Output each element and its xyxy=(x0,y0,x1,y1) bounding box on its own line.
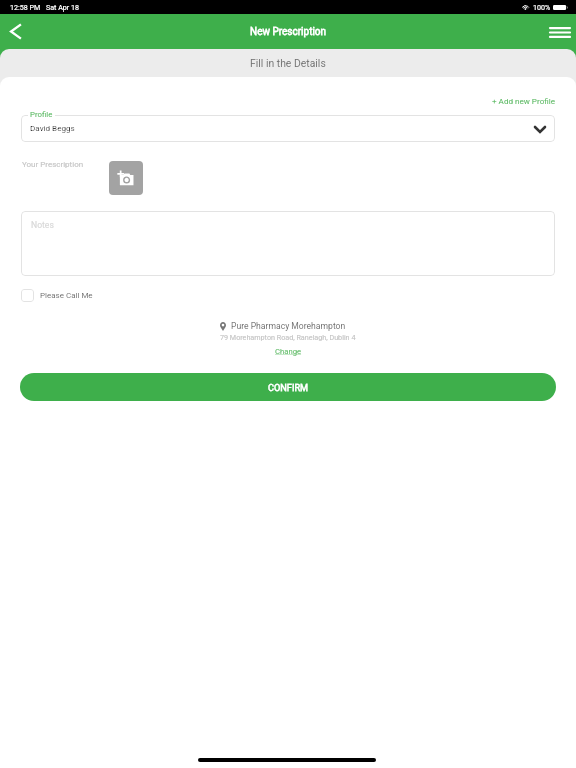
staticText: 79 Morehampton Road, Ranelagh, Dublin 4 xyxy=(220,333,356,341)
staticText: David Beggs xyxy=(30,123,75,132)
button[interactable]: Back xyxy=(0,16,32,48)
button[interactable]: Menu xyxy=(544,16,576,48)
button[interactable]: Notes xyxy=(21,211,555,276)
staticText: Notes xyxy=(31,220,54,230)
button[interactable]: + Add new Profile xyxy=(490,94,557,107)
button[interactable]: CONFIRM xyxy=(20,373,556,401)
staticText: Sat Apr 18 xyxy=(46,3,79,11)
button[interactable]: Add photo xyxy=(109,161,143,195)
staticText: Profile xyxy=(30,110,53,119)
staticText: Your Prescription xyxy=(22,160,84,169)
staticText: 12:58 PM xyxy=(10,3,41,11)
button[interactable]: David Beggs xyxy=(21,115,555,142)
staticText: CONFIRM xyxy=(268,382,309,393)
staticText: New Prescription xyxy=(250,26,327,38)
staticText: 100% xyxy=(533,3,551,11)
button[interactable]: Please Call Me xyxy=(21,289,93,302)
staticText: + Add new Profile xyxy=(492,96,555,105)
staticText: Fill in the Details xyxy=(250,57,326,69)
staticText: Pure Pharmacy Morehampton xyxy=(231,321,346,331)
staticText: Change xyxy=(275,347,302,356)
staticText: Please Call Me xyxy=(40,291,93,300)
button[interactable]: Change xyxy=(275,347,302,356)
